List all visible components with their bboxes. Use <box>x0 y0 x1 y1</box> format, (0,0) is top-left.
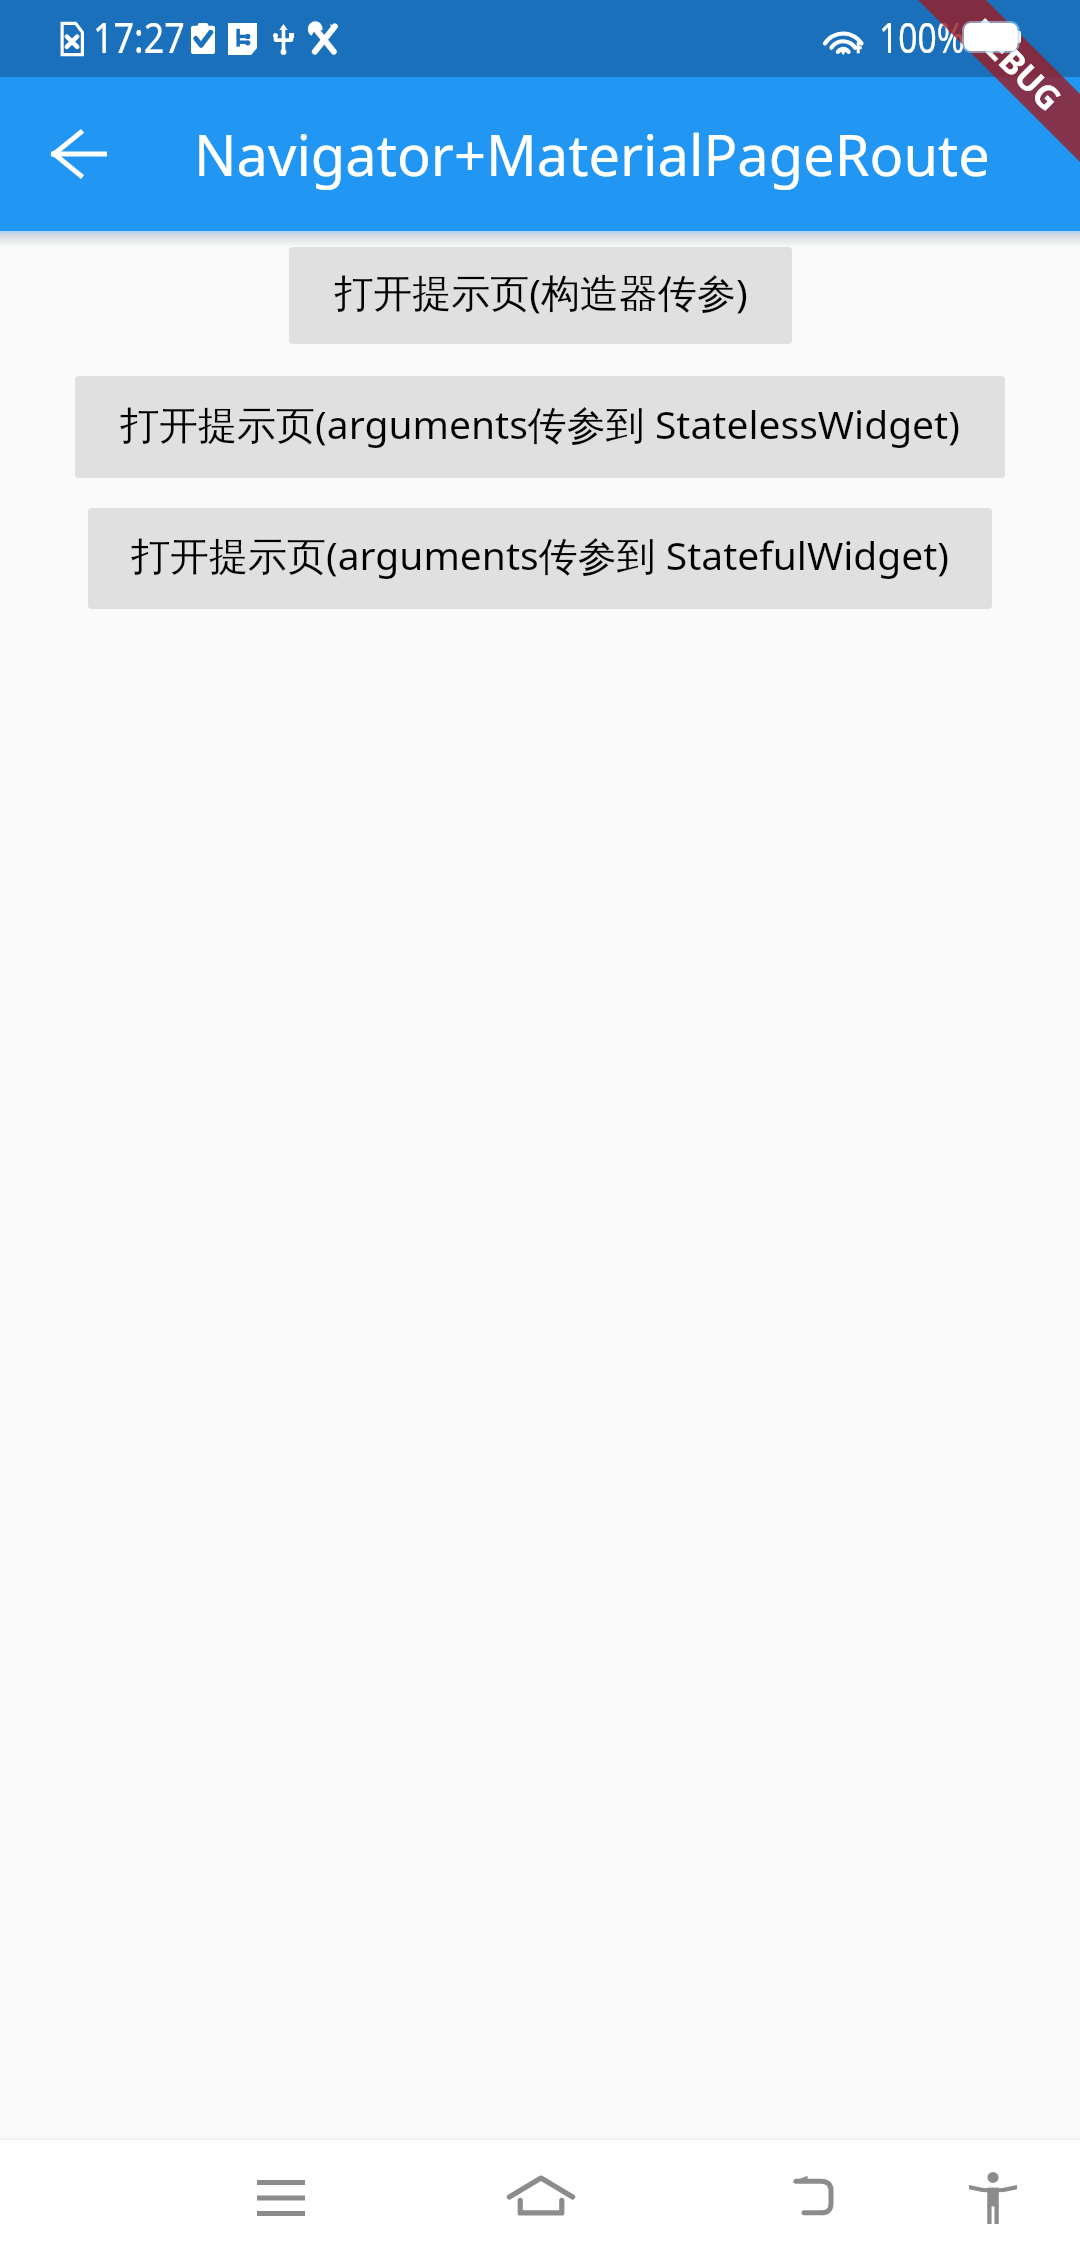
staticText: 打开提示页(arguments传参到 StatefulWidget) <box>131 528 949 581</box>
staticText: 打开提示页(arguments传参到 StatelessWidget) <box>120 397 960 450</box>
button[interactable]: Accessibility <box>945 2150 1041 2246</box>
button[interactable]: 打开提示页(arguments传参到 StatefulWidget) <box>88 508 992 609</box>
staticText: 100% <box>879 9 965 65</box>
button[interactable]: Back <box>30 106 126 202</box>
staticText: DEBUG <box>959 8 1072 120</box>
button[interactable]: Menu <box>233 2150 329 2246</box>
staticText: 打开提示页(构造器传参) <box>334 265 748 318</box>
button[interactable]: 打开提示页(构造器传参) <box>289 247 792 344</box>
staticText: Navigator+MaterialPageRoute <box>194 116 990 192</box>
staticText: 17:27 <box>93 9 185 65</box>
button[interactable]: Home <box>493 2149 589 2245</box>
button[interactable]: 打开提示页(arguments传参到 StatelessWidget) <box>75 376 1005 478</box>
button[interactable]: Back <box>768 2148 864 2244</box>
